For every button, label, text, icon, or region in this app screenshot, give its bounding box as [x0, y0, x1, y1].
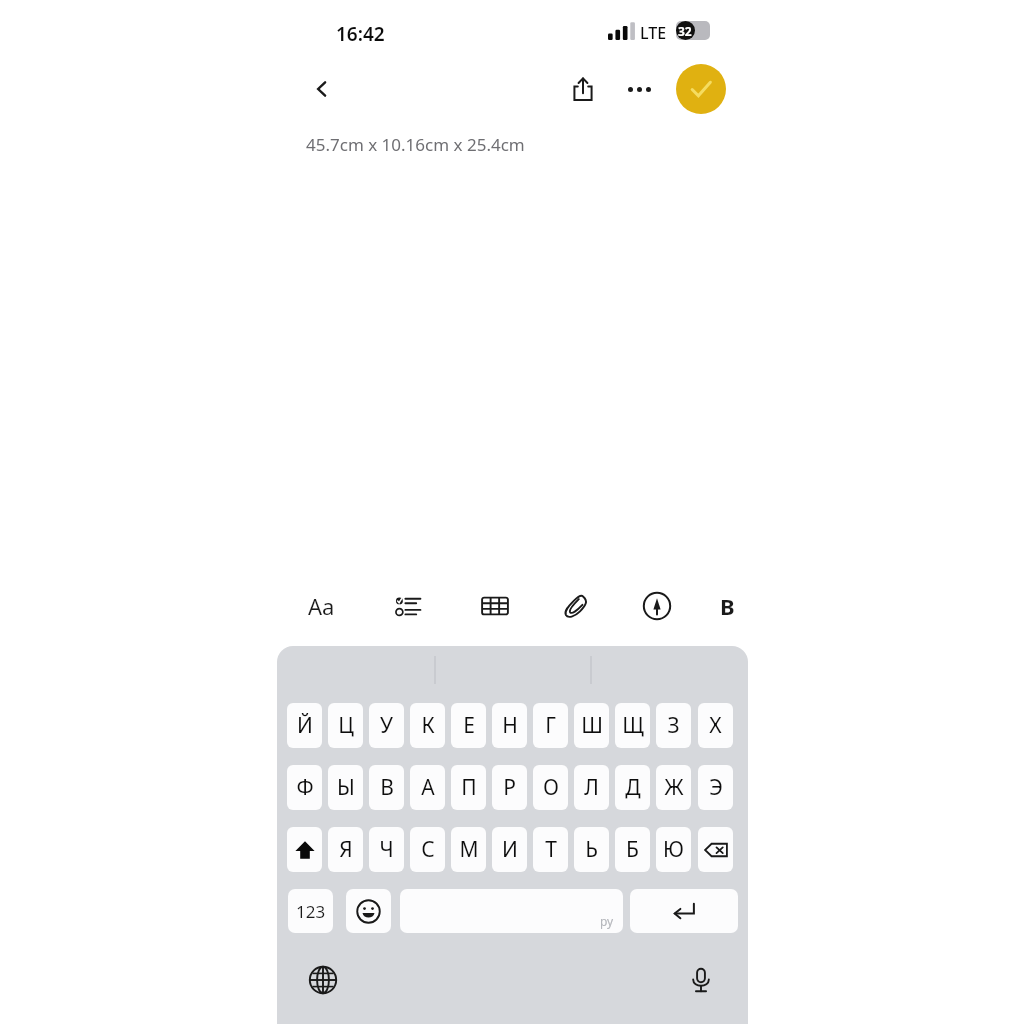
button[interactable]: Ю	[656, 827, 691, 872]
staticText: М	[459, 835, 479, 864]
button[interactable]: Change keyboard	[302, 959, 344, 1001]
button[interactable]: Table	[464, 580, 526, 632]
button[interactable]: У	[369, 703, 404, 748]
staticText: З	[667, 711, 680, 740]
staticText: Е	[463, 711, 475, 740]
button[interactable]: Emoji	[346, 889, 391, 933]
staticText: К	[421, 711, 435, 740]
staticText: В	[380, 773, 394, 802]
staticText: Ц	[338, 711, 354, 740]
staticText: Ь	[585, 835, 598, 864]
staticText: 16:42	[336, 21, 385, 47]
staticText: Ю	[663, 835, 684, 864]
button[interactable]: Backspace	[698, 827, 733, 872]
button[interactable]: Б	[615, 827, 650, 872]
staticText: Щ	[622, 711, 644, 740]
staticText: LTE	[640, 22, 667, 44]
button[interactable]: Р	[492, 765, 527, 810]
button[interactable]: Л	[574, 765, 609, 810]
button[interactable]: Attach	[546, 580, 608, 632]
button[interactable]: С	[410, 827, 445, 872]
button[interactable]: Text format	[288, 580, 354, 632]
button[interactable]: Bold	[708, 580, 748, 632]
staticText: П	[461, 773, 477, 802]
staticText: Б	[626, 835, 639, 864]
staticText: B	[720, 591, 735, 621]
staticText: Р	[503, 773, 516, 802]
button[interactable]: Х	[698, 703, 733, 748]
button[interactable]: М	[451, 827, 486, 872]
button[interactable]: Ш	[574, 703, 609, 748]
staticText: Ж	[664, 773, 684, 802]
button[interactable]: Draw	[626, 580, 688, 632]
staticText: У	[380, 711, 393, 740]
button[interactable]: Ч	[369, 827, 404, 872]
button[interactable]: Ц	[328, 703, 363, 748]
button[interactable]: Н	[492, 703, 527, 748]
button[interactable]: В	[369, 765, 404, 810]
button[interactable]: Return	[630, 889, 738, 933]
staticText: А	[421, 773, 435, 802]
staticText: Ф	[296, 773, 314, 802]
button[interactable]: Ь	[574, 827, 609, 872]
staticText: ру	[600, 913, 614, 929]
button[interactable]: З	[656, 703, 691, 748]
button[interactable]: Done	[676, 64, 726, 114]
button[interactable]: Й	[287, 703, 322, 748]
staticText: Я	[339, 835, 353, 864]
staticText: Aa	[308, 591, 335, 621]
staticText: И	[502, 835, 518, 864]
button[interactable]: Т	[533, 827, 568, 872]
button[interactable]: Share	[554, 64, 611, 114]
button[interactable]: П	[451, 765, 486, 810]
button[interactable]: Э	[698, 765, 733, 810]
button[interactable]: Я	[328, 827, 363, 872]
button[interactable]: А	[410, 765, 445, 810]
button[interactable]: И	[492, 827, 527, 872]
button[interactable]: 123	[288, 889, 333, 933]
button[interactable]: О	[533, 765, 568, 810]
button[interactable]: Щ	[615, 703, 650, 748]
button[interactable]: Д	[615, 765, 650, 810]
staticText: Ы	[337, 773, 355, 802]
staticText: 123	[296, 900, 326, 923]
button[interactable]: Ы	[328, 765, 363, 810]
button[interactable]: Ж	[656, 765, 691, 810]
staticText: О	[543, 773, 559, 802]
button[interactable]: Г	[533, 703, 568, 748]
staticText: Й	[297, 711, 313, 740]
button[interactable]: К	[410, 703, 445, 748]
staticText: Ч	[379, 835, 394, 864]
staticText: Ш	[581, 711, 603, 740]
button[interactable]: Space	[400, 889, 623, 933]
staticText: С	[421, 835, 435, 864]
button[interactable]: Dictation	[680, 959, 722, 1001]
button[interactable]: Checklist	[378, 580, 440, 632]
button[interactable]: Shift	[287, 827, 322, 872]
staticText: 45.7cm x 10.16cm x 25.4cm	[306, 133, 525, 156]
button[interactable]: More options	[611, 64, 668, 114]
staticText: Н	[502, 711, 518, 740]
button[interactable]: Back	[297, 64, 347, 114]
staticText: Т	[545, 835, 557, 864]
staticText: 32	[678, 23, 692, 39]
staticText: Э	[709, 773, 723, 802]
button[interactable]: Е	[451, 703, 486, 748]
staticText: Л	[584, 773, 599, 802]
staticText: Д	[625, 773, 641, 802]
staticText: Г	[545, 711, 556, 740]
button[interactable]: Ф	[287, 765, 322, 810]
staticText: Х	[709, 711, 722, 740]
